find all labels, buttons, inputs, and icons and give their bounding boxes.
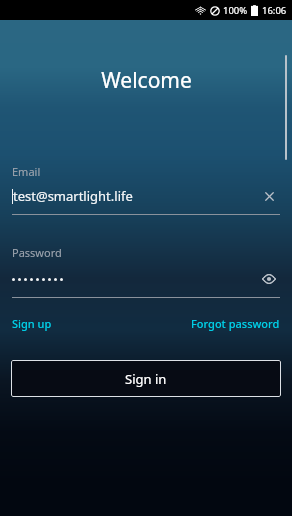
staticText: Email (12, 164, 41, 179)
button[interactable]: Clear email (258, 185, 280, 207)
button[interactable]: Password (0, 245, 292, 298)
staticText: Forgot password (191, 316, 280, 331)
staticText: Sign up (12, 316, 52, 331)
staticText: 100% (223, 4, 248, 17)
staticText: 16:06 (262, 4, 287, 17)
button[interactable]: Show password (258, 268, 280, 290)
staticText: test@smartlight.life (13, 187, 133, 205)
staticText: Password (12, 245, 62, 260)
button[interactable]: Sign in (11, 360, 281, 397)
button[interactable]: Forgot password (191, 312, 280, 335)
button[interactable]: Email (0, 164, 292, 215)
staticText: Sign in (125, 370, 167, 388)
staticText: Welcome (101, 66, 192, 95)
button[interactable]: Sign up (12, 312, 52, 335)
